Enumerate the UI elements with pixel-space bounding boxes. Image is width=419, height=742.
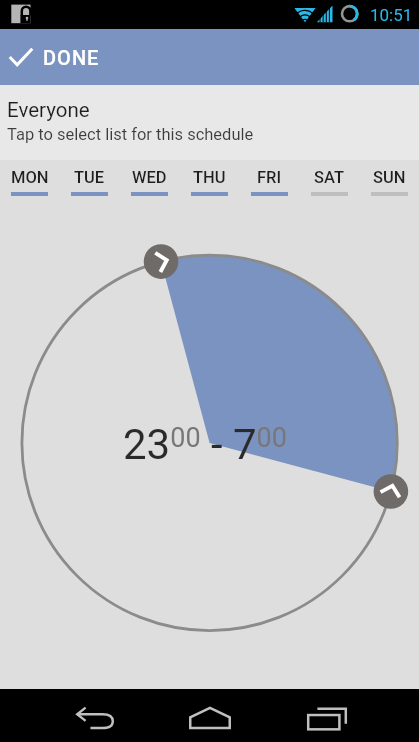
button[interactable]: THU — [179, 160, 239, 200]
staticText: TUE — [74, 168, 105, 187]
staticText: Tap to select list for this schedule — [7, 125, 254, 144]
staticText: SUN — [373, 168, 406, 187]
button[interactable]: Home — [177, 689, 243, 742]
staticText: DONE — [43, 46, 100, 69]
staticText: MON — [11, 168, 49, 187]
button[interactable]: SAT — [299, 160, 359, 200]
staticText: SAT — [314, 168, 345, 187]
button[interactable]: TUE — [59, 160, 119, 200]
button[interactable]: SUN — [359, 160, 419, 200]
staticText: 10:51 — [370, 5, 413, 25]
staticText: FRI — [257, 168, 282, 187]
button[interactable]: FRI — [239, 160, 299, 200]
button[interactable]: DONE — [0, 29, 419, 85]
staticText: Everyone — [7, 98, 90, 122]
staticText: THU — [193, 168, 226, 187]
button[interactable]: MON — [0, 160, 59, 200]
button[interactable]: Recent apps — [294, 689, 360, 742]
button[interactable]: Back — [60, 689, 126, 742]
staticText: WED — [132, 168, 167, 187]
button[interactable]: Everyone — [0, 85, 419, 160]
staticText: 2300 - 700 — [123, 420, 287, 469]
button[interactable]: WED — [119, 160, 179, 200]
